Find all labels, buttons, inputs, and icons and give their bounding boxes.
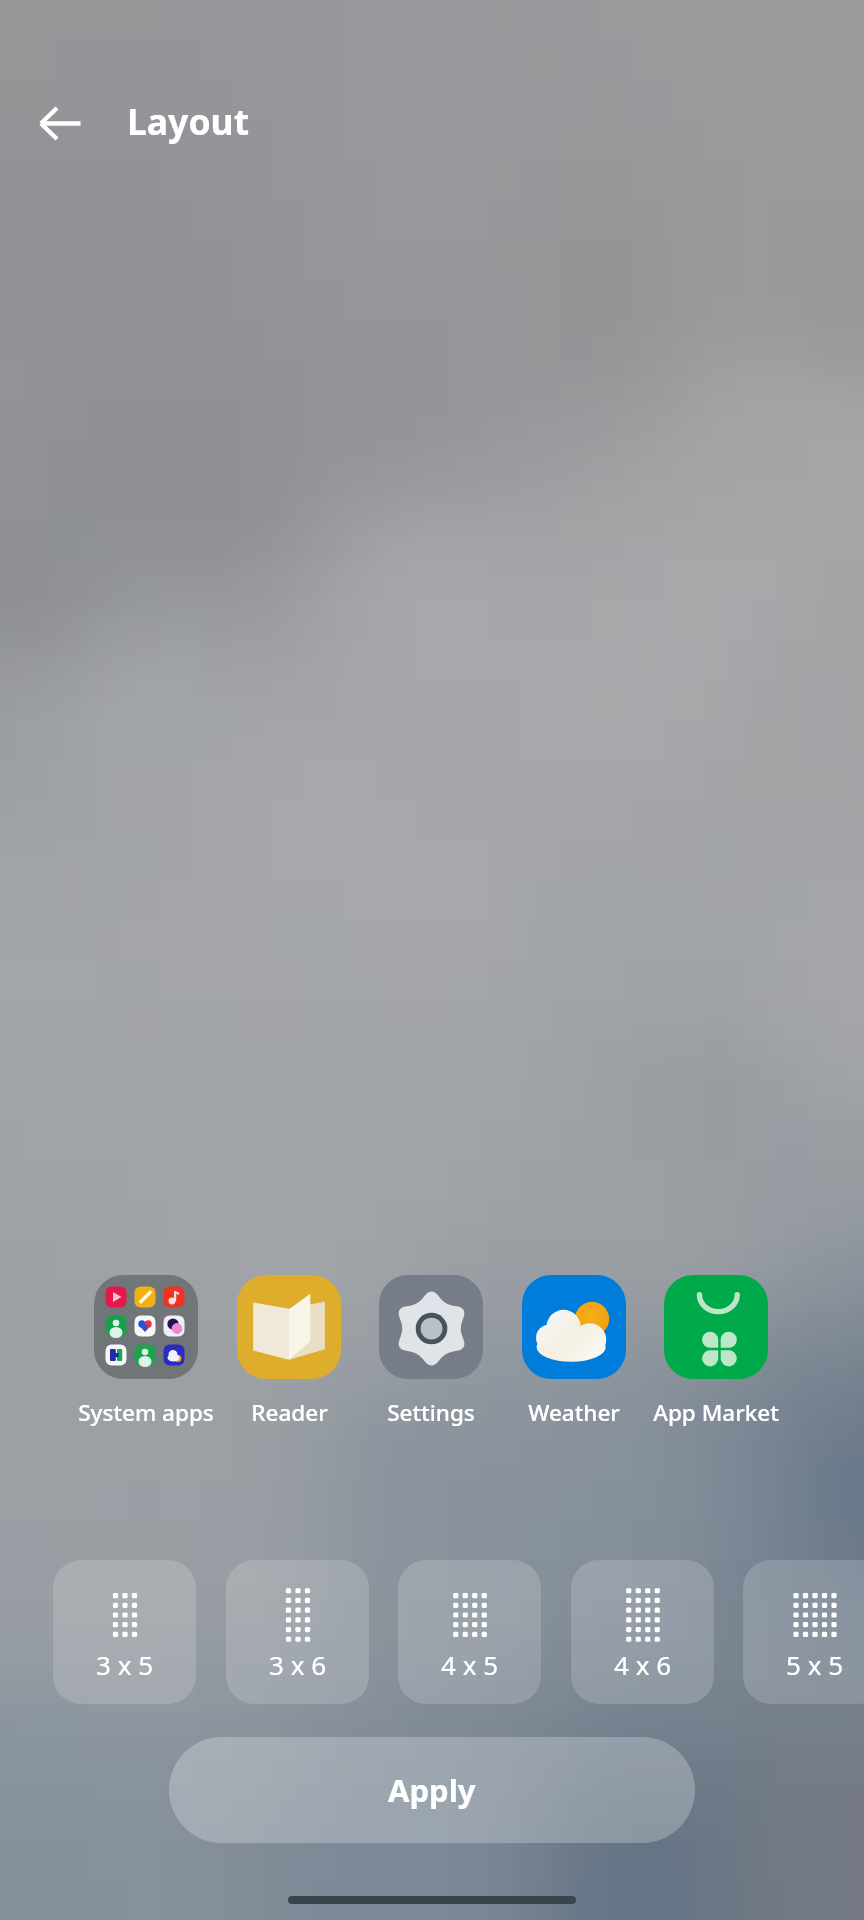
button[interactable]: 3 x 5 [53,1560,196,1704]
button[interactable]: 5 x 5 [743,1560,864,1704]
button[interactable]: Settings [341,1262,521,1432]
button[interactable]: Back [21,84,101,164]
button[interactable]: Apply [169,1737,695,1843]
staticText: Layout [127,97,250,145]
staticText: 4 x 6 [614,1647,672,1682]
staticText: Weather [528,1397,620,1428]
staticText: System apps [78,1397,214,1428]
button[interactable]: App Market [626,1262,806,1432]
staticText: Settings [387,1397,475,1428]
staticText: Apply [388,1769,476,1811]
button[interactable]: System apps [56,1262,236,1432]
staticText: 3 x 6 [269,1647,327,1682]
staticText: Reader [251,1397,328,1428]
button[interactable]: 4 x 5 [398,1560,541,1704]
button[interactable]: Weather [484,1262,664,1432]
button[interactable]: Reader [199,1262,379,1432]
staticText: 4 x 5 [441,1647,499,1682]
button[interactable]: 4 x 6 [571,1560,714,1704]
staticText: 5 x 5 [786,1647,844,1682]
staticText: App Market [653,1397,779,1428]
staticText: 3 x 5 [96,1647,154,1682]
button[interactable]: 3 x 6 [226,1560,369,1704]
